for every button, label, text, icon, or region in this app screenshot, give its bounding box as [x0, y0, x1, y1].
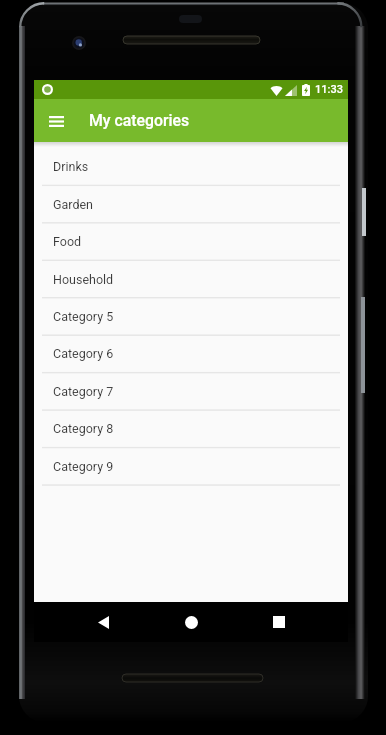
button[interactable]: Back [86, 605, 120, 639]
staticText: Category 6 [53, 346, 114, 361]
button[interactable]: Recent apps [262, 605, 296, 639]
button[interactable]: Category 6 [34, 335, 348, 372]
staticText: Food [53, 234, 82, 249]
button[interactable]: Drinks [34, 148, 348, 185]
staticText: My categories [89, 111, 190, 130]
button[interactable]: Open navigation drawer [38, 103, 74, 139]
button[interactable]: Food [34, 223, 348, 260]
staticText: Household [53, 272, 114, 287]
staticText: Drinks [53, 159, 89, 174]
button[interactable]: Category 5 [34, 298, 348, 335]
button[interactable]: Garden [34, 186, 348, 223]
staticText: Garden [53, 197, 94, 212]
button[interactable]: Category 9 [34, 448, 348, 485]
button[interactable]: Home [174, 605, 208, 639]
button[interactable]: Category 8 [34, 410, 348, 447]
staticText: Category 8 [53, 421, 114, 436]
staticText: Category 7 [53, 384, 114, 399]
staticText: Category 5 [53, 309, 114, 324]
button[interactable]: Category 7 [34, 373, 348, 410]
button[interactable]: Household [34, 261, 348, 298]
staticText: 11:33 [315, 83, 343, 96]
staticText: Category 9 [53, 459, 114, 474]
